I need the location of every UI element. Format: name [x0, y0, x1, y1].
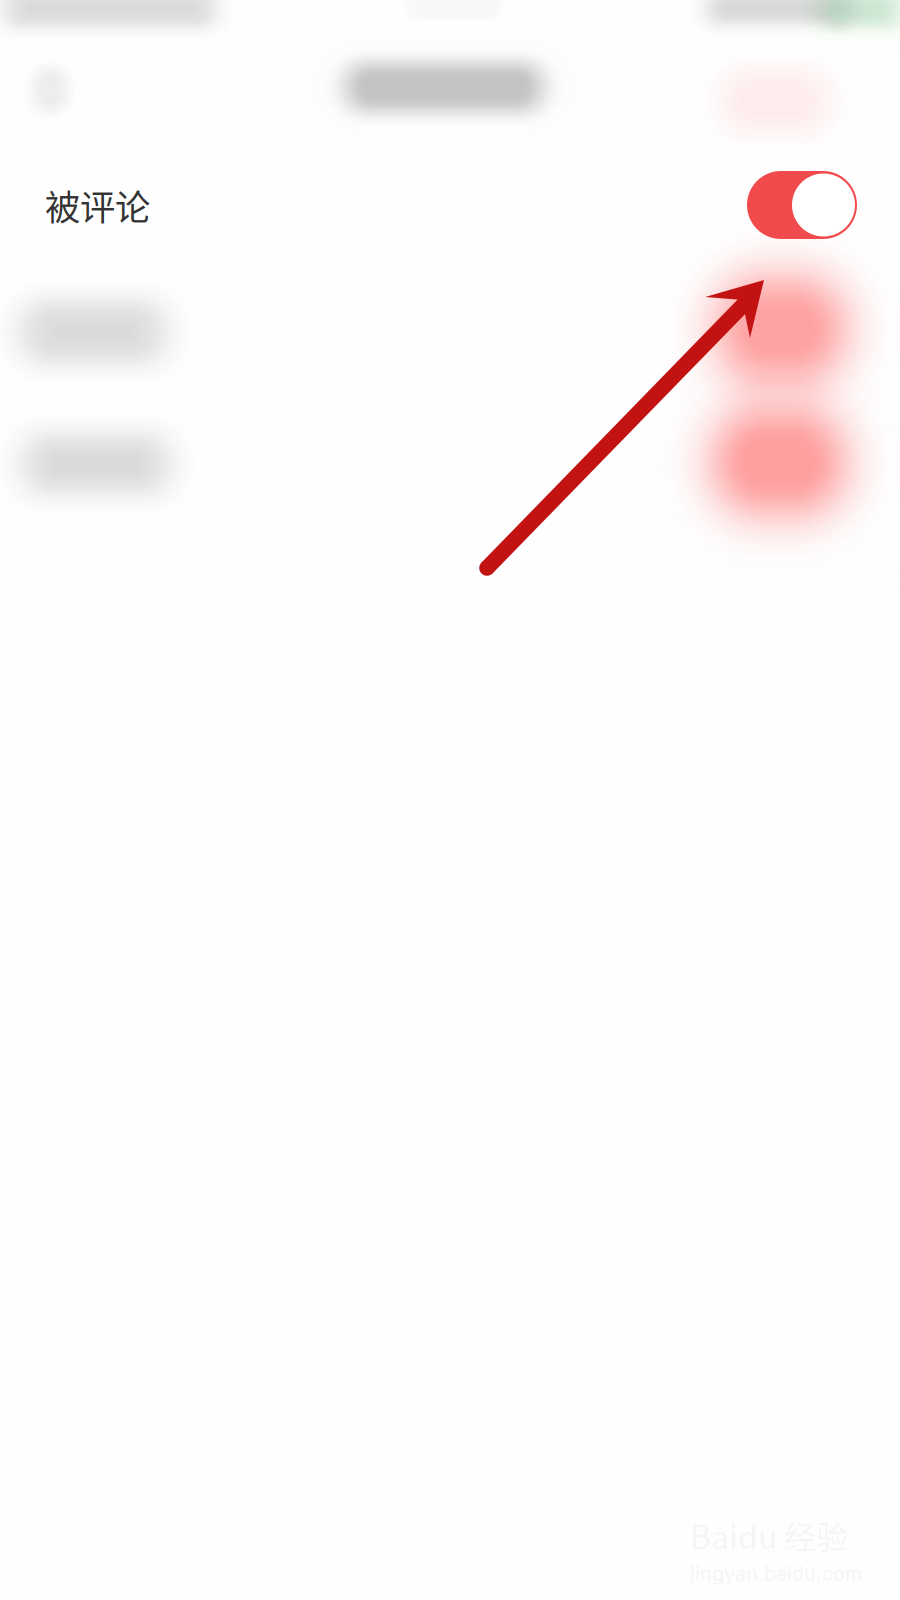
staticText: 被评论	[45, 179, 150, 231]
button[interactable]: 被评论	[0, 149, 900, 261]
staticText: jingyan.baidu.com	[690, 1561, 862, 1585]
staticText: Baidu 经验	[690, 1512, 848, 1558]
button[interactable]: Notification setting	[0, 413, 900, 525]
button[interactable]: Back	[10, 46, 122, 134]
button[interactable]: Notification setting	[0, 281, 900, 393]
